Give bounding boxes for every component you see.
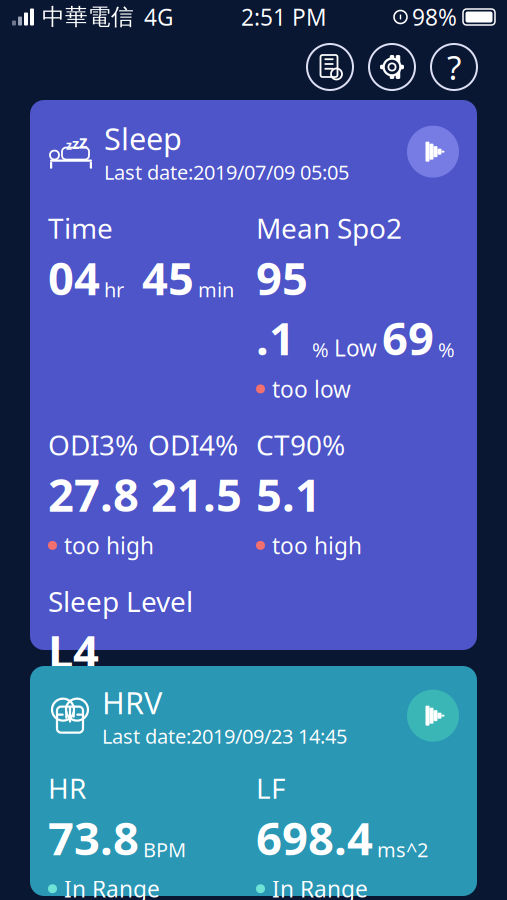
staticText: hr xyxy=(104,276,124,303)
staticText: Sleep Level xyxy=(48,582,193,620)
staticText: too high xyxy=(272,530,362,560)
button[interactable]: Reports xyxy=(307,44,353,90)
staticText: % xyxy=(438,336,455,363)
staticText: too high xyxy=(64,530,154,560)
staticText: In Range xyxy=(64,874,160,900)
staticText: HRV xyxy=(102,682,162,723)
staticText: 69 xyxy=(382,308,434,368)
staticText: ms^2 xyxy=(377,836,428,863)
staticText: too low xyxy=(272,374,351,404)
staticText: 4G xyxy=(144,2,174,32)
staticText: -- xyxy=(64,687,78,717)
button[interactable]: Settings xyxy=(369,44,415,90)
staticText: ODI4% xyxy=(148,426,238,463)
staticText: z xyxy=(66,137,72,153)
staticText: HR xyxy=(48,769,86,806)
staticText: Low xyxy=(334,333,377,363)
staticText: 73.8 xyxy=(48,807,139,868)
staticText: z xyxy=(79,130,88,153)
staticText: ODI3% xyxy=(48,426,138,463)
staticText: ? xyxy=(447,45,461,89)
staticText: Mean Spo2 xyxy=(256,209,402,246)
button[interactable]: Start sleep measurement xyxy=(407,126,459,178)
staticText: BPM xyxy=(143,836,186,863)
staticText: Sleep xyxy=(104,118,182,159)
staticText: 27.8 xyxy=(48,464,139,524)
staticText: CT90% xyxy=(256,426,345,463)
staticText: LF xyxy=(256,769,286,806)
staticText: 98% xyxy=(412,2,457,32)
staticText: 中華電信 xyxy=(42,3,134,31)
staticText: 45 xyxy=(142,247,194,308)
staticText: z xyxy=(72,134,79,153)
staticText: 95.1 xyxy=(256,247,308,368)
staticText: Last date:2019/09/23 14:45 xyxy=(102,723,347,749)
button[interactable]: Read Sleep SpO2 Report xyxy=(69,745,438,804)
button[interactable]: Help xyxy=(431,44,477,90)
staticText: In Range xyxy=(272,874,368,900)
staticText: min xyxy=(198,276,234,303)
staticText: 5.1 xyxy=(256,464,321,524)
button[interactable]: Start HRV measurement xyxy=(407,690,459,742)
staticText: 04 xyxy=(48,247,100,308)
staticText: Last date:2019/07/09 05:05 xyxy=(104,159,349,185)
staticText: % xyxy=(312,336,329,363)
staticText: 21.5 xyxy=(151,464,242,524)
staticText: 698.4 xyxy=(256,807,373,868)
staticText: L4 xyxy=(48,621,99,681)
staticText: Time xyxy=(48,209,113,246)
staticText: 2:51 PM xyxy=(241,2,327,32)
staticText: Read Sleep SpO2 Report xyxy=(95,756,412,793)
